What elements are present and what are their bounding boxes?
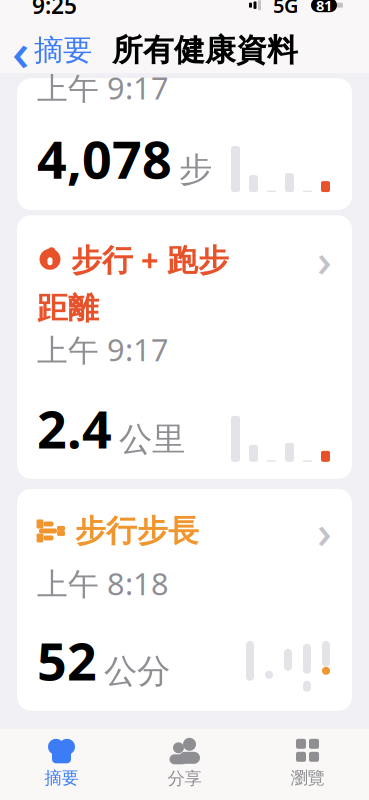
staticText: › xyxy=(317,229,332,289)
staticText: 81 xyxy=(316,0,332,15)
staticText: 步行 + 跑步 xyxy=(71,239,229,280)
staticText: 上午 9:17 xyxy=(37,67,169,108)
staticText: 2.4 xyxy=(37,394,112,463)
button[interactable]: 步行步長 xyxy=(17,489,352,711)
button[interactable]: 瀏覽 xyxy=(246,729,369,789)
staticText: 5G xyxy=(273,0,299,18)
staticText: 摘要 xyxy=(34,32,92,68)
staticText: 9:25 xyxy=(32,0,77,20)
staticText: 距離 xyxy=(37,289,99,327)
staticText: ‹ xyxy=(12,15,29,86)
staticText: 步 xyxy=(179,149,212,190)
button[interactable]: 摘要 xyxy=(0,729,123,789)
button[interactable]: 分享 xyxy=(123,729,246,789)
staticText: 分享 xyxy=(167,768,201,789)
button[interactable]: 上午 9:17 xyxy=(17,78,352,210)
staticText: 52 xyxy=(37,626,97,695)
button[interactable]: 步行 + 跑步 xyxy=(17,215,352,479)
staticText: 步行步長 xyxy=(75,512,199,550)
staticText: › xyxy=(317,501,332,561)
staticText: 瀏覽 xyxy=(290,767,324,789)
staticText: 上午 9:17 xyxy=(37,329,169,370)
staticText: 公里 xyxy=(119,419,185,460)
staticText: 4,078 xyxy=(37,124,172,193)
staticText: 公分 xyxy=(104,651,170,692)
staticText: 摘要 xyxy=(44,767,78,789)
staticText: 所有健康資料 xyxy=(112,31,298,69)
staticText: 上午 8:18 xyxy=(37,563,169,604)
button[interactable]: ‹ xyxy=(0,27,98,73)
